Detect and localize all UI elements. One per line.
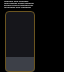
staticText: Aliquam erat volutpat: [4, 0, 29, 2]
staticText: us laoreet non curabitur: [4, 5, 32, 8]
staticText: iaculis urna id volutpat lac: [4, 3, 34, 6]
staticText: nulla facilisi morbi tempus: [4, 1, 34, 4]
